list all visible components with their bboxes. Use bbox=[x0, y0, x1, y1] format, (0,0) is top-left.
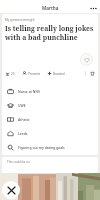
staticText: This could be us bbox=[7, 160, 30, 164]
staticText: My greatest strength bbox=[5, 18, 35, 22]
staticText: Leeds bbox=[18, 131, 28, 136]
button[interactable]: More options bbox=[86, 3, 100, 13]
staticText: Boosted bbox=[53, 72, 65, 76]
button[interactable]: Boosted bbox=[47, 71, 65, 76]
staticText: Is telling really long jokes with a bad … bbox=[5, 24, 96, 42]
staticText: Nurse at NHS bbox=[18, 89, 40, 94]
button[interactable]: Leeds bbox=[2, 126, 98, 140]
staticText: UWE bbox=[18, 103, 26, 108]
button[interactable]: UWE bbox=[2, 98, 98, 112]
button[interactable]: Figuring out my dating goals bbox=[2, 140, 98, 154]
button[interactable]: Promote bbox=[22, 71, 41, 76]
staticText: Promote bbox=[28, 72, 41, 76]
staticText: Figuring out my dating goals bbox=[18, 145, 65, 150]
staticText: Martha bbox=[42, 5, 59, 11]
button[interactable]: Nurse at NHS bbox=[2, 84, 98, 98]
button[interactable]: Atheist bbox=[2, 112, 98, 126]
staticText: 23 bbox=[11, 72, 15, 76]
button[interactable]: Like bbox=[80, 53, 93, 66]
button[interactable]: Delete bbox=[89, 70, 95, 76]
button[interactable]: 23 bbox=[5, 71, 15, 76]
staticText: Atheist bbox=[18, 117, 30, 122]
button[interactable]: Dislike bbox=[2, 181, 20, 199]
